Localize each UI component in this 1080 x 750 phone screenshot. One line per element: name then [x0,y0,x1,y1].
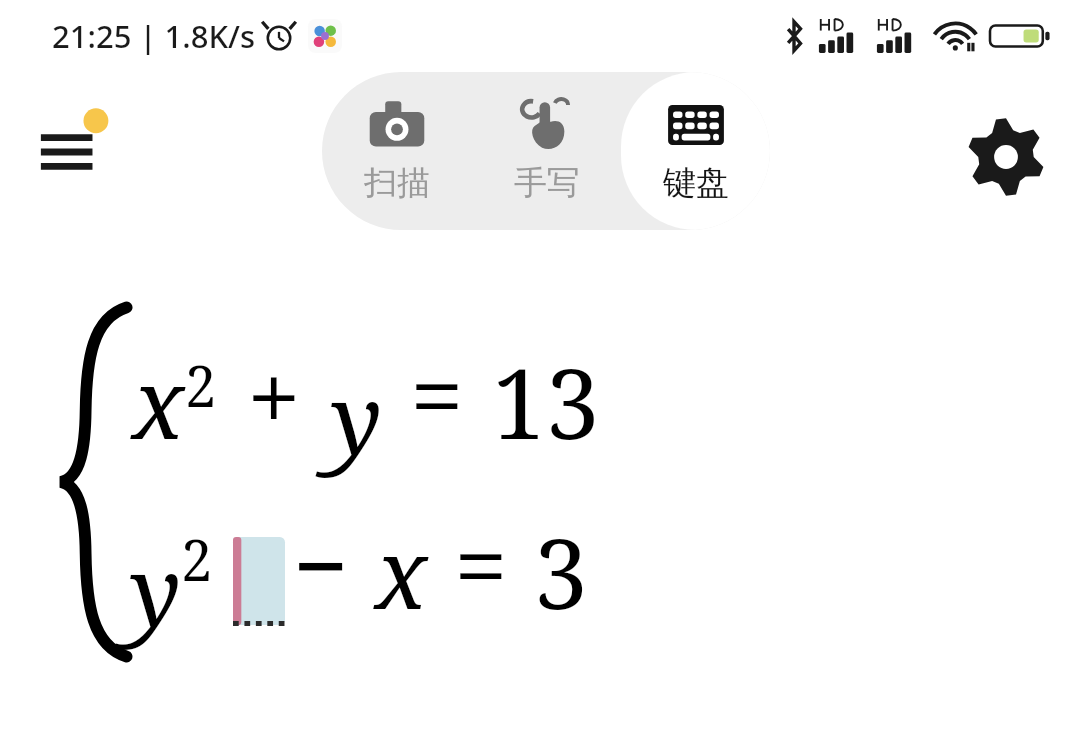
staticText: = [454,498,508,629]
button[interactable]: Menu [34,104,120,184]
button[interactable]: x [0,290,1080,690]
staticText: y [130,524,181,655]
staticText: 3 [534,506,588,637]
button[interactable]: 扫描 [322,72,472,230]
staticText: 2 [185,347,217,423]
button[interactable]: 手写 [472,72,621,230]
staticText: 键盘 [663,162,729,204]
staticText: + [247,330,301,461]
button[interactable]: Settings [962,113,1050,201]
staticText: y [331,352,382,483]
staticText: 2 [181,521,213,597]
staticText: 21:25 | 1.8K/s [52,15,256,57]
button[interactable]: 键盘 [621,72,770,230]
staticText: 手写 [514,162,580,204]
staticText: 扫描 [364,162,430,204]
staticText: 13 [492,336,600,467]
staticText: = [410,328,464,459]
staticText: − [293,498,349,629]
staticText: x [375,506,428,637]
staticText: x [132,336,185,467]
